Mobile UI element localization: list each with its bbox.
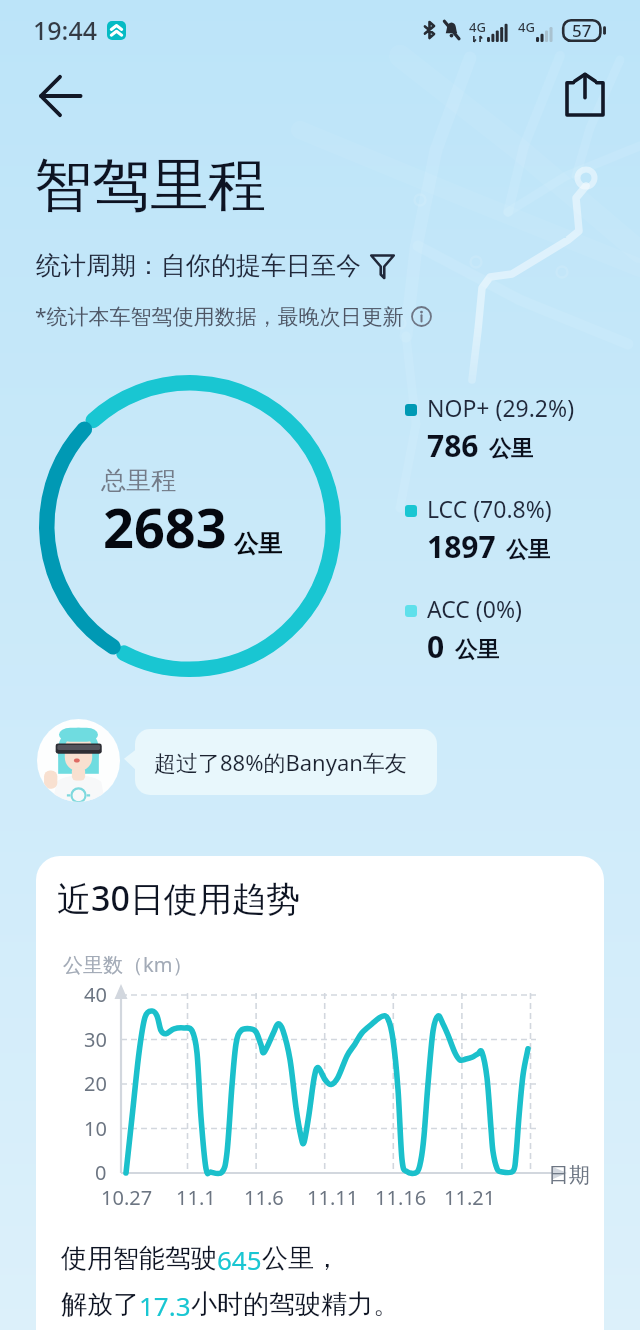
staticText: ACC (0%)	[427, 593, 522, 624]
staticText: 0	[95, 1159, 107, 1185]
staticText: 11.21	[444, 1184, 496, 1210]
staticText: 11.1	[176, 1184, 216, 1210]
staticText: 40	[84, 981, 107, 1007]
staticText: 11.11	[307, 1184, 359, 1210]
staticText: 公里	[234, 529, 282, 559]
staticText: 645	[217, 1242, 262, 1277]
button[interactable]: Avatar	[37, 719, 120, 802]
staticText: 11.16	[375, 1184, 427, 1210]
staticText: 4G	[469, 18, 486, 36]
staticText: NOP+ (29.2%)	[427, 392, 575, 423]
staticText: 统计周期：自你的提车日至今	[36, 250, 361, 281]
staticText: 0	[427, 626, 445, 667]
staticText: *统计本车智驾使用数据，最晚次日更新	[35, 302, 404, 331]
staticText: 公里数（km）	[63, 951, 193, 978]
staticText: 智驾里程	[34, 149, 266, 222]
staticText: 超过了88%的Banyan车友	[154, 747, 407, 777]
staticText: 公里	[506, 536, 550, 564]
staticText: 2683	[103, 490, 227, 564]
staticText: 解放了	[61, 1288, 139, 1321]
staticText: 10.27	[101, 1184, 153, 1210]
staticText: 4G	[518, 18, 535, 36]
staticText: 小时的驾驶精力。	[191, 1288, 399, 1321]
staticText: 10	[84, 1115, 107, 1141]
staticText: 公里，	[262, 1242, 340, 1275]
staticText: 总里程	[101, 465, 176, 496]
staticText: 20	[84, 1070, 107, 1096]
staticText: 日期	[548, 1162, 590, 1188]
button[interactable]: Share	[545, 55, 625, 135]
staticText: 30	[84, 1026, 107, 1052]
staticText: 近30日使用趋势	[57, 875, 300, 921]
staticText: 17.3	[139, 1288, 191, 1323]
staticText: LCC (70.8%)	[427, 493, 552, 524]
button[interactable]: Filter	[367, 251, 397, 281]
staticText: 公里	[455, 636, 499, 664]
staticText: 公里	[489, 435, 533, 463]
button[interactable]: Back	[20, 56, 100, 136]
staticText: 57	[572, 19, 592, 42]
staticText: 786	[427, 425, 479, 466]
staticText: 19:44	[33, 13, 98, 47]
staticText: 11.6	[244, 1184, 284, 1210]
staticText: 使用智能驾驶	[61, 1242, 217, 1275]
staticText: 1897	[427, 526, 496, 567]
button[interactable]: 超过了88%的Banyan车友	[135, 729, 437, 795]
